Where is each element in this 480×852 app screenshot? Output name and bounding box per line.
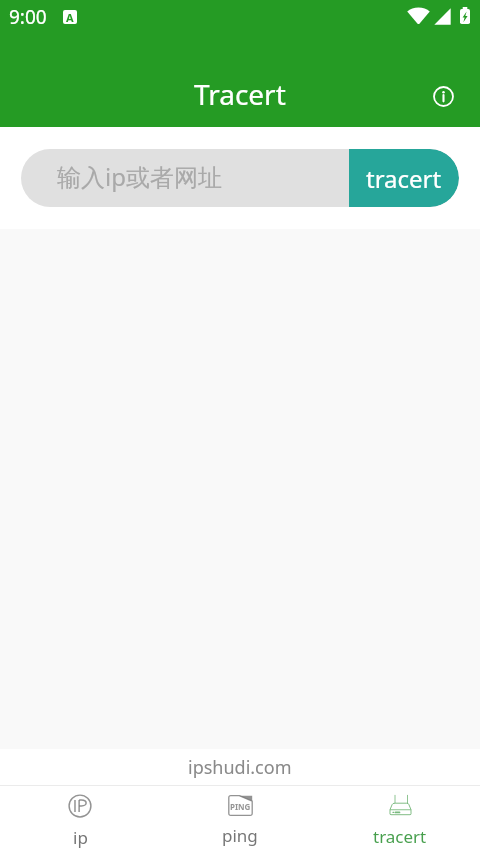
staticText: ip xyxy=(73,826,88,849)
button[interactable]: Info xyxy=(425,78,461,114)
staticText: Tracert xyxy=(194,75,286,113)
staticText: A xyxy=(66,10,74,24)
staticText: ipshudi.com xyxy=(188,755,292,780)
staticText: 9:00 xyxy=(9,4,47,30)
staticText: 输入ip或者网址 xyxy=(57,160,222,193)
button[interactable]: tracert xyxy=(320,786,480,852)
button[interactable]: PING xyxy=(160,786,320,852)
button[interactable]: 输入ip或者网址 xyxy=(57,149,349,207)
button[interactable]: ip xyxy=(0,786,160,852)
staticText: ping xyxy=(222,824,258,847)
button[interactable]: tracert xyxy=(349,149,459,207)
staticText: PING xyxy=(230,801,251,812)
staticText: tracert xyxy=(373,825,427,848)
staticText: tracert xyxy=(366,162,442,195)
